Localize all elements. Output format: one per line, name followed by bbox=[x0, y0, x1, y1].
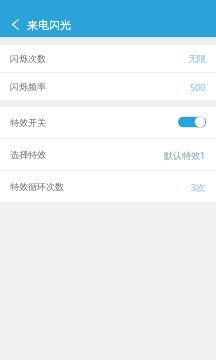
staticText: 特效开关 bbox=[10, 117, 46, 128]
staticText: 特效循环次数 bbox=[10, 181, 64, 192]
staticText: 3次 bbox=[191, 181, 206, 193]
staticText: 来电闪光 bbox=[27, 18, 71, 36]
button[interactable]: 特效循环次数 bbox=[0, 171, 216, 202]
button[interactable]: 闪烁次数 bbox=[0, 45, 216, 72]
staticText: 无限 bbox=[188, 53, 206, 64]
button[interactable]: Back bbox=[0, 12, 30, 36]
staticText: 默认特效1 bbox=[164, 149, 206, 161]
staticText: 选择特效 bbox=[10, 149, 46, 160]
button[interactable]: 选择特效 bbox=[0, 139, 216, 170]
staticText: 闪烁频率 bbox=[10, 81, 46, 92]
staticText: 闪烁次数 bbox=[10, 53, 46, 64]
button[interactable]: 特效开关 bbox=[0, 107, 216, 138]
button[interactable]: 闪烁频率 bbox=[0, 73, 216, 100]
staticText: 500 bbox=[190, 81, 206, 93]
